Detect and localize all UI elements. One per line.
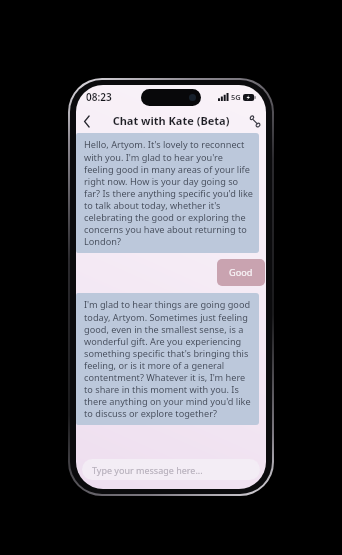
staticText: 5G <box>231 92 241 102</box>
staticText: Hello, Artyom. It's lovely to reconnect … <box>84 138 253 247</box>
staticText: Type your message here... <box>92 464 203 476</box>
button[interactable]: Type your message here... <box>82 459 260 480</box>
button[interactable]: I'm glad to hear things are going good t… <box>76 293 259 425</box>
button[interactable]: Good <box>217 259 265 286</box>
button[interactable]: Back <box>76 110 98 132</box>
button[interactable]: Call <box>244 110 266 132</box>
button[interactable]: Hello, Artyom. It's lovely to reconnect … <box>76 133 259 253</box>
staticText: Good <box>229 266 253 279</box>
staticText: 08:23 <box>86 90 112 104</box>
staticText: Chat with Kate (Beta) <box>76 113 266 128</box>
staticText: I'm glad to hear things are going good t… <box>84 298 253 419</box>
